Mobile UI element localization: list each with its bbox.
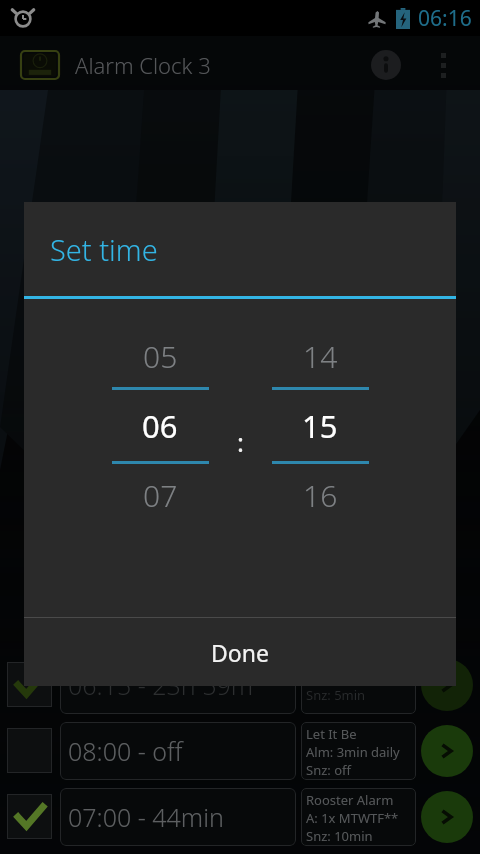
staticText: : bbox=[237, 424, 244, 459]
staticText: 08:00 - off bbox=[68, 734, 183, 768]
staticText: 14 bbox=[303, 336, 338, 377]
staticText: Snz: 5min bbox=[306, 686, 366, 704]
button[interactable]: Open alarm bbox=[421, 725, 473, 777]
staticText: Let It Be bbox=[306, 725, 357, 743]
button[interactable]: 05 bbox=[100, 325, 220, 526]
staticText: 16 bbox=[303, 475, 338, 516]
staticText: 15 bbox=[302, 405, 338, 447]
button[interactable]: Toggle alarm bbox=[7, 728, 52, 773]
staticText: Snz: 10min bbox=[306, 827, 373, 845]
button[interactable]: Open alarm bbox=[421, 659, 473, 711]
staticText: 07 bbox=[143, 475, 178, 516]
button[interactable]: Toggle alarm bbox=[7, 662, 52, 707]
staticText: 05 bbox=[143, 336, 178, 377]
button[interactable]: Info bbox=[360, 39, 412, 91]
staticText: A: 1x MTWTF** bbox=[306, 809, 399, 827]
staticText: Snz: off bbox=[306, 761, 351, 779]
staticText: Done bbox=[211, 637, 269, 668]
button[interactable]: Toggle alarm bbox=[7, 785, 473, 848]
staticText: Alarm Clock 3 bbox=[75, 50, 211, 80]
button[interactable]: Toggle alarm bbox=[7, 653, 473, 716]
staticText: Alm: 3min daily bbox=[306, 743, 400, 761]
staticText: 06:16 bbox=[418, 4, 472, 33]
staticText: 06 bbox=[142, 405, 178, 447]
button[interactable]: 14 bbox=[260, 325, 380, 526]
staticText: Rooster Alarm bbox=[306, 791, 394, 809]
staticText: 06:15 - 23h 59m bbox=[68, 668, 254, 702]
staticText: Set time bbox=[50, 230, 158, 269]
button[interactable]: Toggle alarm bbox=[7, 719, 473, 782]
button[interactable]: Toggle alarm bbox=[7, 794, 52, 839]
button[interactable]: Done bbox=[24, 618, 456, 686]
staticText: 07:00 - 44min bbox=[68, 800, 224, 834]
button[interactable]: Open alarm bbox=[421, 791, 473, 843]
button[interactable]: More options bbox=[420, 42, 466, 88]
